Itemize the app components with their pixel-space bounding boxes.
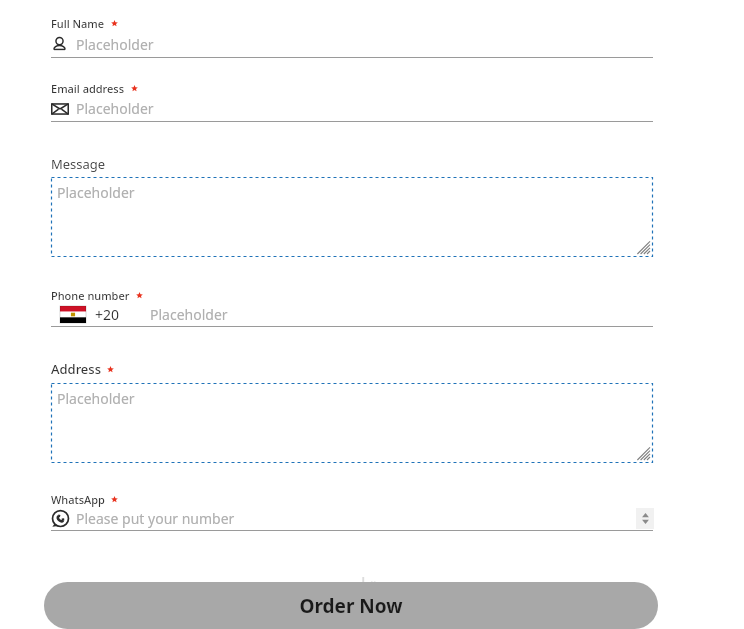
button[interactable]: +20 <box>51 303 653 325</box>
button[interactable]: Placeholder <box>51 32 653 57</box>
staticText: WhatsApp <box>51 492 105 507</box>
button[interactable]: Please put your number <box>51 507 653 530</box>
staticText: Placeholder <box>76 99 154 118</box>
staticText: Message <box>51 155 106 173</box>
staticText: Placeholder <box>76 35 154 54</box>
button[interactable]: Placeholder <box>51 96 653 121</box>
staticText: Address <box>51 360 101 378</box>
staticText: mostaql.com <box>345 601 425 619</box>
staticText: Placeholder <box>57 183 135 202</box>
staticText: Email address <box>51 81 125 96</box>
staticText: مستقل <box>349 573 421 601</box>
staticText: Phone number <box>51 288 130 303</box>
staticText: Order Now <box>299 593 403 619</box>
button[interactable]: Placeholder <box>51 177 653 257</box>
button[interactable]: Placeholder <box>51 383 653 463</box>
staticText: Placeholder <box>150 305 228 324</box>
staticText: Placeholder <box>57 389 135 408</box>
button[interactable]: Increment or decrement number <box>636 508 654 529</box>
staticText: Full Name <box>51 16 105 31</box>
button[interactable]: Order Now <box>44 582 658 629</box>
staticText: +20 <box>95 305 120 324</box>
staticText: Please put your number <box>76 509 235 528</box>
